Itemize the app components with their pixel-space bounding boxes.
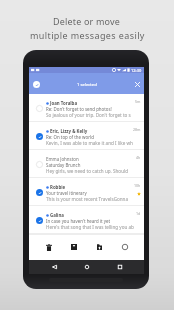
button[interactable]: Robbie <box>29 178 144 206</box>
staticText: Hey girls, we need to catch up. Should <box>46 168 138 174</box>
button[interactable]: More options <box>116 238 134 256</box>
staticText: 1d <box>136 211 141 216</box>
staticText: Galina <box>50 212 64 218</box>
button[interactable]: Home <box>79 260 94 274</box>
staticText: 5m <box>135 99 141 104</box>
staticText: Delete or move <box>53 15 121 27</box>
staticText: Kevin, I was able to make it and I like … <box>46 140 138 146</box>
staticText: Re: On top of the world <box>46 134 138 140</box>
staticText: This is your most recent TravelsGonna <box>46 196 138 202</box>
staticText: 28m <box>133 127 141 132</box>
staticText: Re: Don't forget to send photos! <box>46 106 138 112</box>
button[interactable]: Recent apps <box>112 260 127 274</box>
button[interactable]: Back <box>47 260 62 274</box>
button[interactable]: Archive <box>65 238 83 256</box>
button[interactable]: Close <box>130 73 144 94</box>
button[interactable]: Delete <box>40 238 58 256</box>
staticText: multiple messages easily <box>30 29 145 41</box>
staticText: So jealous of your trip. Don't forget to… <box>46 112 138 118</box>
staticText: Joan Toralba <box>50 100 78 106</box>
staticText: Eric, Lizzy & Kelly <box>50 128 88 134</box>
staticText: 12:30 <box>131 68 142 73</box>
button[interactable]: Eric, Lizzy & Kelly <box>29 122 144 150</box>
button[interactable]: Joan Toralba <box>29 94 144 122</box>
button[interactable]: Deselect all <box>33 81 40 88</box>
staticText: 10h <box>134 183 141 188</box>
staticText: 4h <box>136 155 141 160</box>
button[interactable]: Emma Johnston <box>29 150 144 178</box>
staticText: Saturday Brunch <box>46 162 138 168</box>
staticText: Robbie <box>50 184 66 190</box>
staticText: Emma Johnston <box>46 156 79 162</box>
staticText: 1 selected <box>77 82 97 88</box>
button[interactable]: Move to folder <box>90 238 108 256</box>
staticText: Here's that song that I was telling you … <box>46 224 138 230</box>
staticText: In case you haven't heard it yet <box>46 218 138 224</box>
staticText: Your travel itinerary <box>46 190 138 196</box>
button[interactable]: Galina <box>29 206 144 234</box>
